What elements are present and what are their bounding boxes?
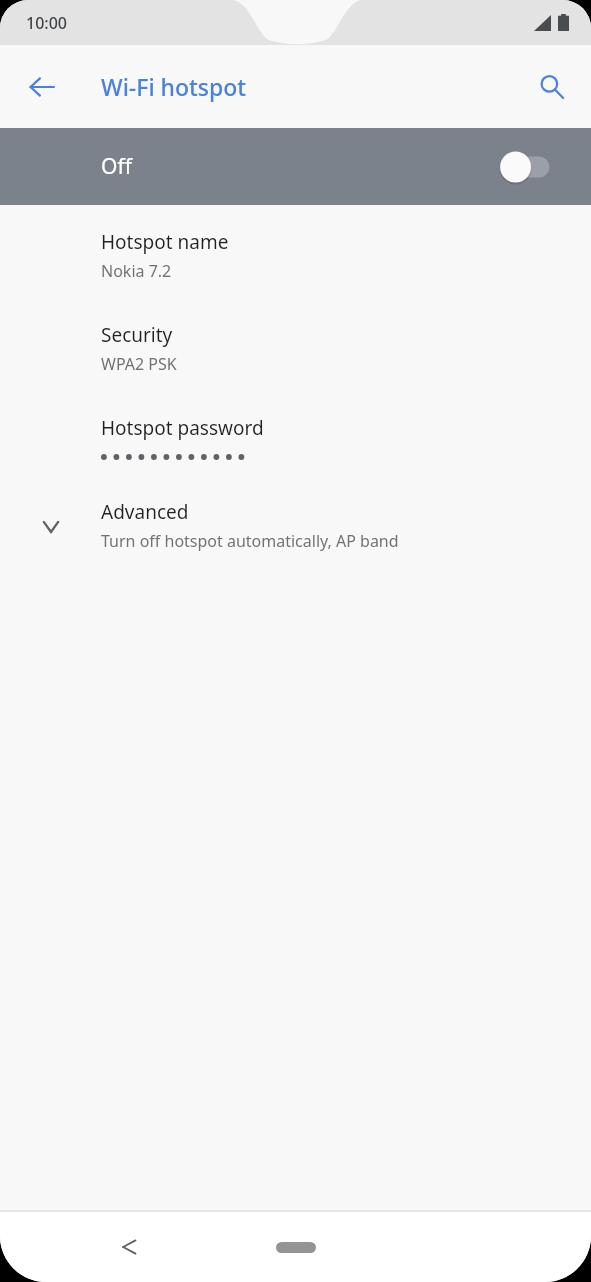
- staticText: Hotspot password: [101, 415, 264, 441]
- staticText: Advanced: [101, 499, 189, 525]
- button[interactable]: Hotspot name: [0, 205, 591, 296]
- button[interactable]: Security: [0, 296, 591, 389]
- staticText: Turn off hotspot automatically, AP band: [101, 530, 399, 552]
- staticText: WPA2 PSK: [101, 353, 177, 375]
- button[interactable]: Back: [104, 1223, 152, 1271]
- button[interactable]: Search: [528, 63, 576, 111]
- staticText: 10:00: [26, 12, 67, 34]
- button[interactable]: Advanced: [0, 477, 591, 568]
- staticText: Nokia 7.2: [101, 260, 172, 282]
- button[interactable]: Back: [18, 63, 66, 111]
- staticText: Off: [101, 152, 132, 181]
- staticText: Hotspot name: [101, 229, 229, 255]
- button[interactable]: Off: [0, 128, 591, 205]
- button[interactable]: Home: [276, 1242, 316, 1253]
- button[interactable]: Hotspot password: [0, 389, 591, 477]
- staticText: Security: [101, 322, 173, 348]
- staticText: Wi-Fi hotspot: [101, 71, 247, 102]
